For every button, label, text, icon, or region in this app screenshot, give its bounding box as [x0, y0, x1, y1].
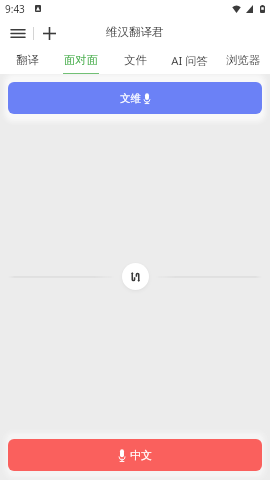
- button[interactable]: Menu: [4, 19, 32, 47]
- button[interactable]: 翻译: [0, 50, 54, 74]
- staticText: 面对面: [64, 53, 98, 67]
- button[interactable]: 面对面: [54, 50, 108, 74]
- staticText: 中文: [130, 448, 152, 462]
- staticText: 浏览器: [226, 53, 260, 67]
- staticText: 文件: [124, 53, 147, 67]
- staticText: 翻译: [16, 53, 39, 67]
- staticText: AI 问答: [171, 53, 208, 68]
- staticText: 文维: [120, 92, 141, 105]
- button[interactable]: 中文: [8, 439, 262, 471]
- button[interactable]: Swap languages: [122, 263, 149, 290]
- button[interactable]: 文维: [8, 82, 262, 114]
- staticText: 9:43: [5, 2, 25, 16]
- button[interactable]: Add: [35, 19, 63, 47]
- staticText: 维汉翻译君: [106, 25, 164, 39]
- button[interactable]: 文件: [108, 50, 162, 74]
- button[interactable]: 浏览器: [216, 50, 270, 74]
- button[interactable]: AI 问答: [162, 50, 216, 74]
